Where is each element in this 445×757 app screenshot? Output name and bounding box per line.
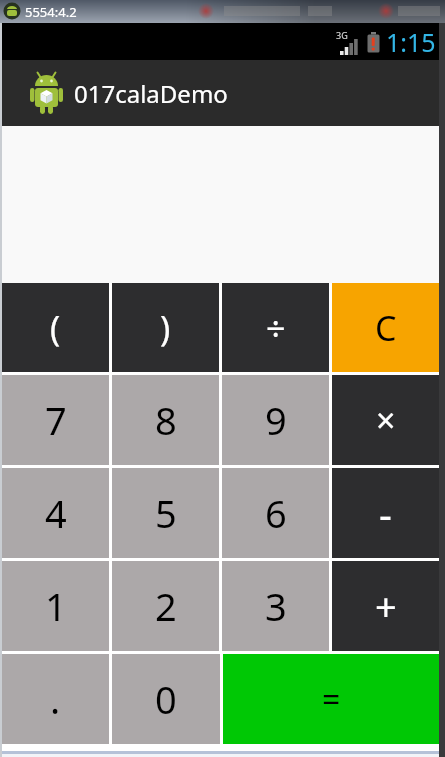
- staticText: 3: [265, 580, 287, 632]
- button[interactable]: ×: [332, 375, 439, 465]
- button[interactable]: 5: [112, 468, 219, 558]
- staticText: 9: [265, 394, 287, 446]
- button[interactable]: ): [112, 283, 219, 372]
- staticText: 4: [45, 487, 67, 539]
- button[interactable]: C: [332, 283, 439, 372]
- staticText: 1:15: [386, 25, 436, 59]
- staticText: 0: [155, 673, 177, 725]
- button[interactable]: 6: [222, 468, 329, 558]
- staticText: C: [375, 305, 397, 351]
- button[interactable]: 3: [222, 561, 329, 651]
- button[interactable]: ÷: [222, 283, 329, 372]
- staticText: 2: [155, 580, 177, 632]
- staticText: +: [375, 580, 397, 632]
- button[interactable]: 7: [2, 375, 109, 465]
- button[interactable]: .: [2, 654, 109, 744]
- button[interactable]: -: [332, 468, 439, 558]
- button[interactable]: =: [223, 654, 439, 744]
- staticText: -: [379, 486, 392, 540]
- staticText: 5554:4.2: [25, 3, 77, 21]
- staticText: 017calaDemo: [74, 77, 228, 110]
- button[interactable]: 1: [2, 561, 109, 651]
- staticText: ÷: [266, 305, 286, 351]
- staticText: 1: [45, 580, 67, 632]
- button[interactable]: 0: [112, 654, 220, 744]
- button[interactable]: +: [332, 561, 439, 651]
- staticText: 8: [155, 394, 177, 446]
- staticText: ×: [376, 397, 396, 443]
- button[interactable]: 9: [222, 375, 329, 465]
- staticText: 7: [45, 394, 67, 446]
- staticText: 6: [265, 487, 287, 539]
- button[interactable]: (: [2, 283, 109, 372]
- staticText: .: [50, 673, 61, 725]
- button[interactable]: 8: [112, 375, 219, 465]
- staticText: 3G: [336, 29, 348, 41]
- staticText: 5: [155, 487, 177, 539]
- button[interactable]: 2: [112, 561, 219, 651]
- staticText: ): [160, 305, 171, 351]
- staticText: =: [322, 677, 341, 721]
- button[interactable]: 4: [2, 468, 109, 558]
- staticText: (: [50, 305, 61, 351]
